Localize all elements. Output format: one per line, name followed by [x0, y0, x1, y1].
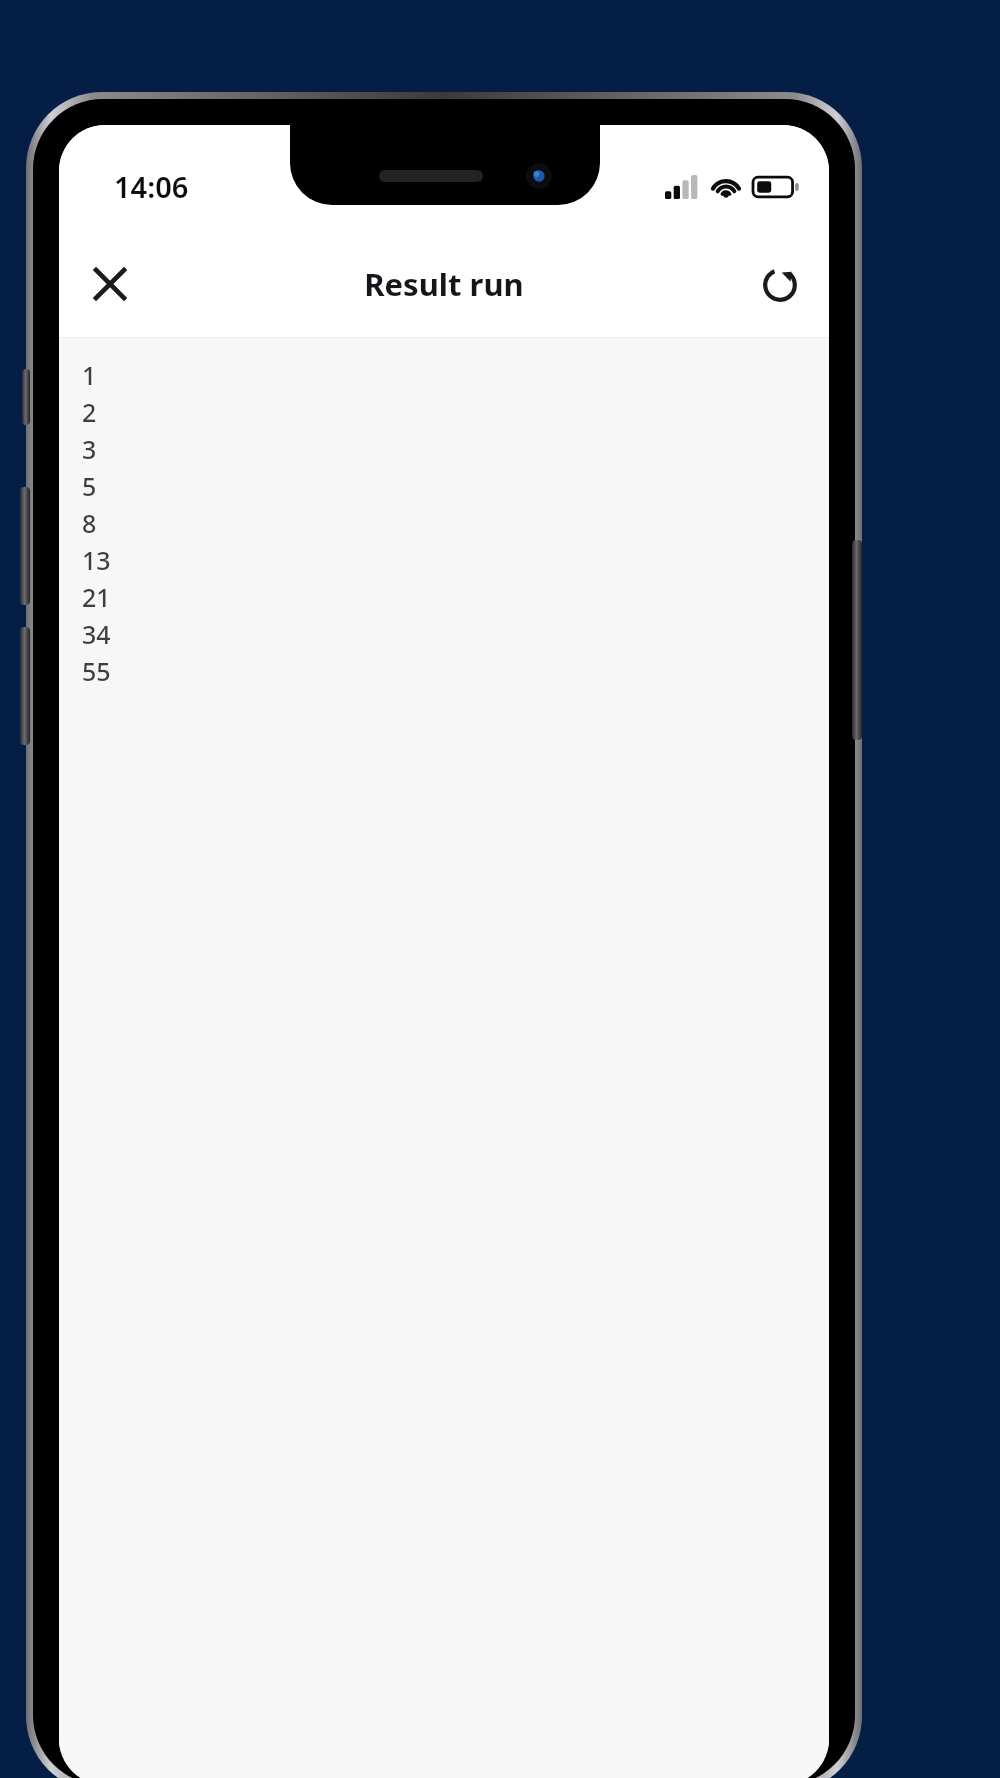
button[interactable]: 55 — [82, 652, 829, 689]
staticText: 1 — [82, 358, 97, 392]
button[interactable]: Close — [79, 253, 141, 315]
staticText: 13 — [82, 543, 111, 577]
button[interactable]: 34 — [82, 615, 829, 652]
button[interactable]: 21 — [82, 578, 829, 615]
button[interactable]: 5 — [82, 467, 829, 504]
button[interactable]: 3 — [82, 430, 829, 467]
button[interactable]: 8 — [82, 504, 829, 541]
button[interactable]: 1 — [82, 356, 829, 393]
staticText: 55 — [82, 654, 111, 688]
staticText: Result run — [364, 263, 524, 305]
button[interactable]: 13 — [82, 541, 829, 578]
button[interactable]: Refresh — [749, 253, 811, 315]
button[interactable]: 2 — [82, 393, 829, 430]
staticText: 34 — [82, 617, 111, 651]
staticText: 8 — [82, 506, 97, 540]
staticText: 2 — [82, 395, 97, 429]
staticText: 14:06 — [114, 167, 189, 206]
staticText: 21 — [82, 580, 111, 614]
staticText: 3 — [82, 432, 97, 466]
staticText: 5 — [82, 469, 97, 503]
